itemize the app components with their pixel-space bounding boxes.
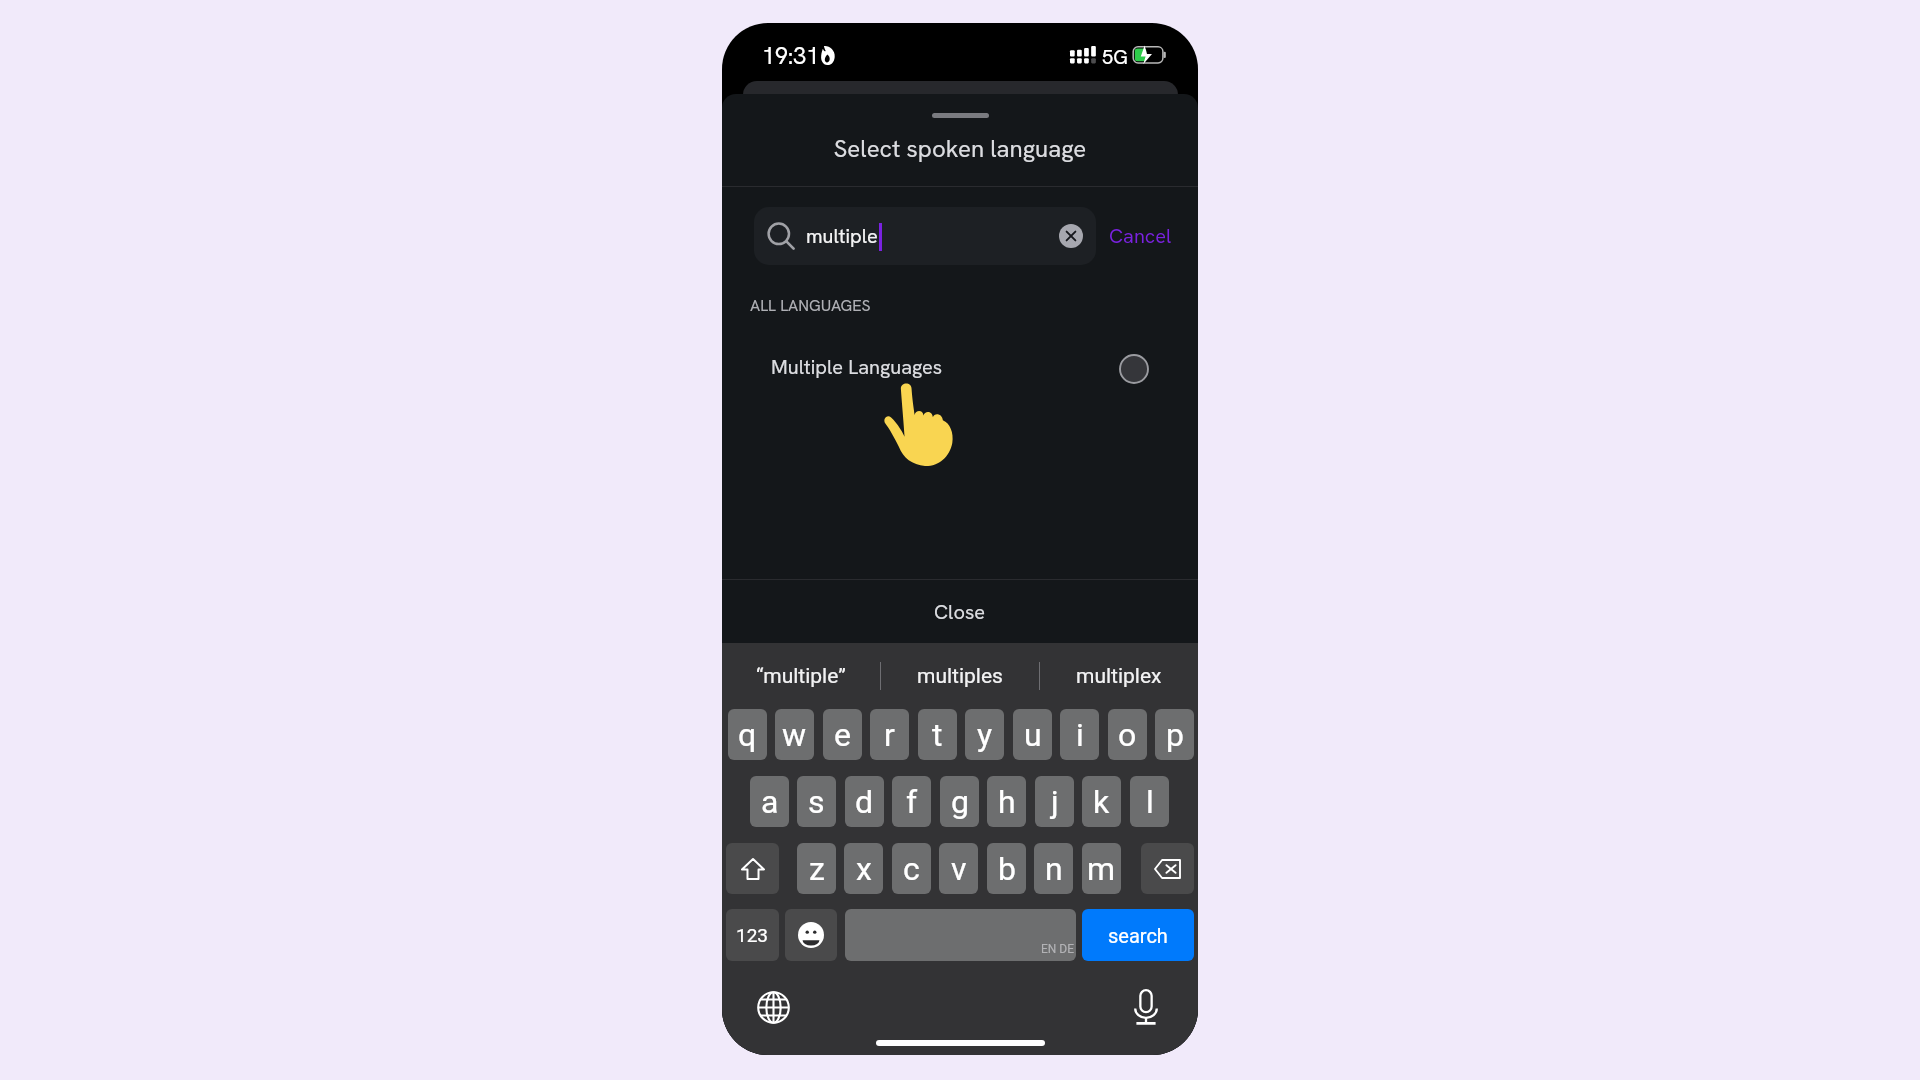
button[interactable]: n [1034,843,1073,894]
button[interactable]: d [845,776,884,827]
staticText: t [932,716,943,754]
staticText: multiple [806,223,878,249]
button[interactable]: s [797,776,836,827]
staticText: g [951,783,969,821]
button[interactable]: w [775,709,814,760]
staticText: x [856,850,872,888]
staticText: w [782,716,807,754]
staticText: z [809,850,825,888]
button[interactable]: l [1130,776,1169,827]
button[interactable]: Cancel [1102,207,1178,265]
button[interactable]: multiplex [1040,643,1198,709]
button[interactable]: g [940,776,979,827]
button[interactable]: t [918,709,957,760]
staticText: 5G [1102,44,1128,70]
staticText: k [1093,783,1110,821]
button[interactable]: Voice input [1123,984,1168,1029]
button[interactable]: Change keyboard language [751,985,796,1030]
staticText: v [951,850,967,888]
button[interactable]: Emoji [785,909,837,961]
button[interactable]: multiple [754,207,1096,265]
staticText: b [998,850,1016,888]
staticText: m [1087,850,1116,888]
button[interactable]: “multiple” [722,643,880,709]
button[interactable]: k [1082,776,1121,827]
staticText: Select spoken language [722,133,1198,164]
staticText: p [1166,716,1184,754]
staticText: l [1146,783,1154,821]
staticText: multiplex [1076,664,1162,689]
staticText: s [808,783,825,821]
button[interactable]: p [1155,709,1194,760]
staticText: e [834,716,851,754]
button[interactable]: f [892,776,931,827]
button[interactable]: b [987,843,1026,894]
staticText: multiples [917,664,1003,689]
button[interactable]: 123 [726,909,779,961]
button[interactable]: o [1108,709,1147,760]
staticText: 123 [736,924,769,946]
staticText: f [906,783,918,821]
staticText: Close [934,599,986,625]
staticText: Multiple Languages [771,354,943,380]
staticText: d [855,783,874,821]
staticText: search [1108,924,1168,947]
button[interactable]: i [1060,709,1099,760]
staticText: u [1024,716,1042,754]
staticText: Cancel [1109,223,1172,249]
button[interactable]: Backspace [1141,843,1194,894]
button[interactable]: search [1082,909,1194,961]
button[interactable]: c [892,843,931,894]
staticText: j [1051,783,1059,821]
button[interactable]: Space [845,909,1076,961]
button[interactable]: Close [722,580,1198,643]
staticText: h [998,783,1016,821]
button[interactable]: v [939,843,978,894]
button[interactable]: h [987,776,1026,827]
button[interactable]: x [844,843,883,894]
staticText: r [884,716,895,754]
staticText: EN DE [1041,942,1075,956]
staticText: i [1076,716,1084,754]
staticText: q [738,716,757,754]
button[interactable]: r [870,709,909,760]
staticText: ALL LANGUAGES [750,295,871,316]
button[interactable]: m [1082,843,1121,894]
staticText: “multiple” [756,664,846,689]
button[interactable]: Clear text [1059,224,1083,248]
button[interactable]: Multiple Languages [722,341,1198,395]
button[interactable]: multiples [881,643,1039,709]
button[interactable]: e [823,709,862,760]
staticText: c [903,850,920,888]
button[interactable]: u [1013,709,1052,760]
staticText: 19:31 [762,41,820,71]
button[interactable]: Shift [726,843,779,894]
button[interactable]: a [750,776,789,827]
staticText: o [1118,716,1137,754]
staticText: y [977,716,993,754]
staticText: n [1045,850,1063,888]
button[interactable]: j [1035,776,1074,827]
button[interactable]: q [728,709,767,760]
button[interactable]: y [965,709,1004,760]
button[interactable]: z [797,843,836,894]
staticText: a [761,783,779,821]
